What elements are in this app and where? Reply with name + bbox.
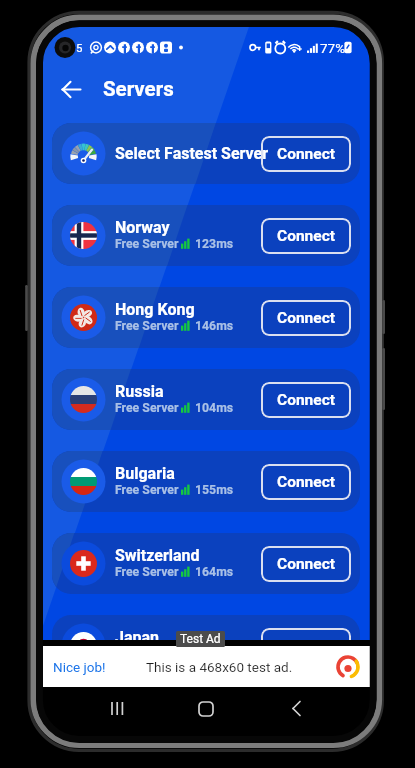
button[interactable]: Connect: [261, 628, 351, 664]
staticText: 77%: [320, 40, 346, 56]
button[interactable]: Russia: [52, 369, 360, 430]
button[interactable]: Back: [56, 74, 86, 104]
staticText: Bulgaria: [115, 464, 175, 483]
button[interactable]: Japan: [52, 615, 360, 676]
staticText: Nice job!: [53, 659, 106, 675]
button[interactable]: Back: [277, 687, 317, 727]
staticText: Connect: [277, 391, 335, 409]
staticText: 146ms: [195, 319, 234, 333]
staticText: Connect: [277, 637, 335, 655]
button[interactable]: Bulgaria: [52, 451, 360, 512]
staticText: 155ms: [195, 483, 234, 497]
button[interactable]: Connect: [261, 546, 351, 582]
staticText: Russia: [115, 382, 164, 401]
staticText: Connect: [277, 473, 335, 491]
staticText: 164ms: [195, 565, 234, 579]
staticText: 123ms: [195, 237, 234, 251]
button[interactable]: Connect: [261, 300, 351, 336]
staticText: Switzerland: [115, 546, 200, 565]
staticText: Japan: [115, 628, 160, 647]
staticText: 5: [76, 41, 83, 54]
staticText: Free Server: [115, 237, 179, 251]
staticText: Connect: [277, 555, 335, 573]
staticText: 104ms: [195, 401, 234, 415]
button[interactable]: Select Fastest Server: [52, 123, 360, 184]
staticText: Select Fastest Server: [115, 144, 269, 163]
staticText: Connect: [277, 227, 335, 245]
staticText: Norway: [115, 218, 170, 237]
button[interactable]: Connect: [261, 464, 351, 500]
button[interactable]: Connect: [261, 218, 351, 254]
staticText: Free Server: [115, 565, 179, 579]
button[interactable]: Switzerland: [52, 533, 360, 594]
button[interactable]: Nice job!: [43, 646, 370, 687]
button[interactable]: Connect: [261, 382, 351, 418]
button[interactable]: Hong Kong: [52, 287, 360, 348]
staticText: Servers: [103, 77, 174, 101]
button[interactable]: Connect: [261, 136, 351, 172]
button[interactable]: Norway: [52, 205, 360, 266]
staticText: Hong Kong: [115, 300, 195, 319]
staticText: This is a 468x60 test ad.: [146, 659, 293, 675]
staticText: Test Ad: [180, 632, 221, 646]
button[interactable]: Recents: [99, 687, 139, 727]
staticText: Free Server: [115, 401, 179, 415]
staticText: Free Server: [115, 483, 179, 497]
staticText: Connect: [277, 145, 335, 163]
staticText: Free Server: [115, 319, 179, 333]
staticText: Connect: [277, 309, 335, 327]
button[interactable]: Home: [186, 687, 226, 727]
